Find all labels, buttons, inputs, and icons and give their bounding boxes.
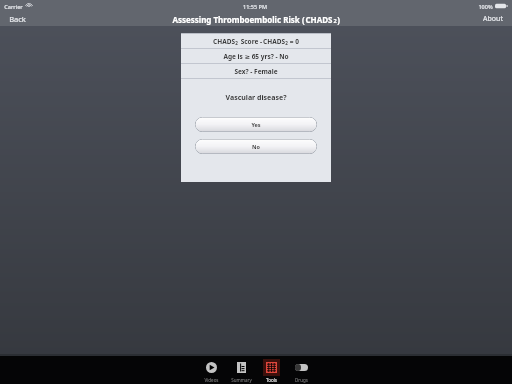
- staticText: ): [337, 14, 340, 25]
- button[interactable]: Back: [7, 12, 28, 26]
- staticText: 100%: [478, 3, 493, 10]
- staticText: CHADS: [263, 37, 285, 46]
- button[interactable]: Tools: [256, 356, 286, 384]
- staticText: = 0: [288, 37, 299, 46]
- staticText: About: [483, 14, 503, 24]
- staticText: CHADS: [213, 37, 235, 46]
- staticText: No: [252, 143, 260, 150]
- staticText: Score -: [238, 37, 263, 46]
- button[interactable]: Summary: [226, 356, 256, 384]
- button[interactable]: Sex? - Female: [181, 64, 331, 78]
- button[interactable]: Drugs: [286, 356, 316, 384]
- staticText: Assessing Thromboembolic Risk (: [172, 14, 305, 25]
- staticText: Vascular disease?: [181, 93, 331, 103]
- button[interactable]: No: [195, 139, 317, 154]
- staticText: 11:55 PM: [243, 3, 267, 10]
- staticText: Summary: [231, 377, 252, 383]
- staticText: Videos: [204, 377, 219, 383]
- staticText: 2: [285, 40, 288, 46]
- staticText: Age is ≥ 65 yrs? - No: [223, 52, 289, 61]
- button[interactable]: About: [481, 12, 505, 26]
- button[interactable]: Yes: [195, 117, 317, 132]
- staticText: Tools: [266, 377, 277, 383]
- staticText: Sex? - Female: [234, 67, 278, 76]
- button[interactable]: Videos: [196, 356, 226, 384]
- button[interactable]: CHADS: [181, 34, 331, 48]
- staticText: 2: [333, 17, 337, 25]
- staticText: 2: [235, 40, 238, 46]
- staticText: CHADS: [305, 14, 333, 25]
- staticText: Drugs: [295, 377, 308, 383]
- staticText: Yes: [251, 121, 261, 128]
- staticText: Back: [9, 14, 26, 24]
- staticText: Carrier: [4, 3, 23, 10]
- button[interactable]: Age is ≥ 65 yrs? - No: [181, 49, 331, 63]
